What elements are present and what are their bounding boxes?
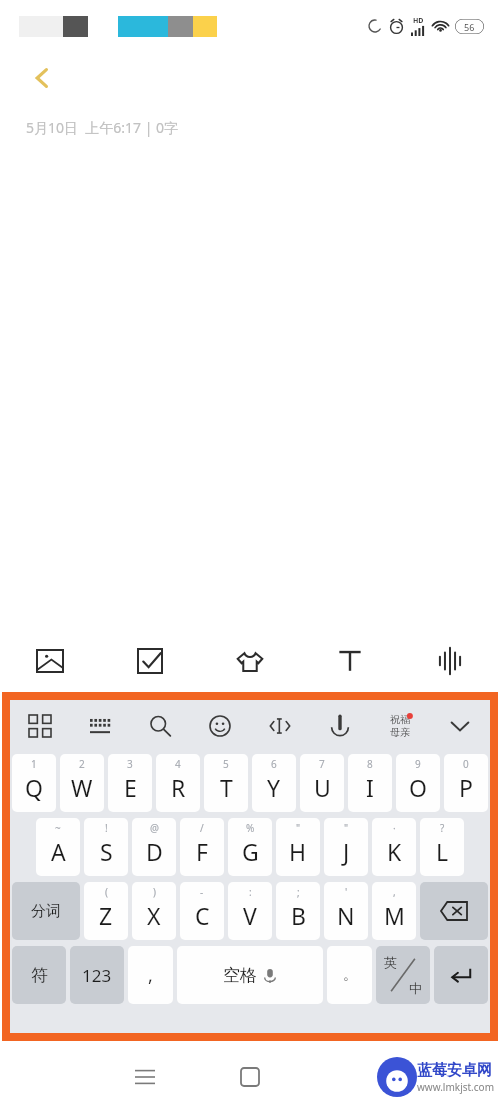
staticText: ,: [148, 963, 153, 988]
button[interactable]: Voice input: [310, 700, 370, 752]
staticText: ': [345, 885, 348, 899]
button[interactable]: (: [84, 882, 128, 940]
button[interactable]: 9: [396, 754, 440, 812]
button[interactable]: 6: [252, 754, 296, 812]
button[interactable]: Style: [200, 630, 300, 692]
staticText: ?: [440, 821, 445, 835]
button[interactable]: !: [84, 818, 128, 876]
staticText: 56: [464, 21, 475, 33]
button[interactable]: ": [324, 818, 368, 876]
button[interactable]: Keyboard layout: [70, 700, 130, 752]
button[interactable]: 8: [348, 754, 392, 812]
staticText: 英: [384, 954, 397, 970]
staticText: 1: [31, 757, 37, 771]
button[interactable]: %: [228, 818, 272, 876]
button[interactable]: 符: [12, 946, 66, 1004]
staticText: Y: [267, 772, 281, 803]
staticText: M: [384, 900, 405, 931]
staticText: 5: [223, 757, 229, 771]
staticText: U: [314, 772, 331, 803]
staticText: 。: [343, 966, 357, 984]
button[interactable]: Delete: [420, 882, 488, 940]
button[interactable]: Checklist: [100, 630, 200, 692]
staticText: 6: [271, 757, 277, 771]
staticText: Z: [99, 900, 113, 931]
staticText: X: [147, 900, 161, 931]
staticText: N: [337, 900, 355, 931]
staticText: E: [124, 772, 137, 803]
staticText: 8: [367, 757, 373, 771]
staticText: ;: [297, 885, 300, 899]
button[interactable]: 123: [70, 946, 124, 1004]
button[interactable]: Voice: [400, 630, 500, 692]
staticText: 分词: [31, 902, 61, 921]
button[interactable]: ,: [128, 946, 173, 1004]
button[interactable]: Recent apps: [121, 1053, 169, 1101]
staticText: A: [51, 836, 66, 867]
staticText: L: [436, 836, 449, 867]
staticText: 2: [79, 757, 85, 771]
button[interactable]: Insert image: [0, 630, 100, 692]
button[interactable]: Enter: [434, 946, 488, 1004]
button[interactable]: ~: [36, 818, 80, 876]
staticText: D: [146, 836, 163, 867]
staticText: /: [200, 821, 204, 835]
staticText: 符: [31, 965, 48, 986]
staticText: 9: [415, 757, 421, 771]
button[interactable]: ': [324, 882, 368, 940]
button[interactable]: ;: [276, 882, 320, 940]
button[interactable]: 1: [12, 754, 56, 812]
staticText: Q: [25, 772, 43, 803]
staticText: T: [220, 772, 233, 803]
button[interactable]: Greeting: [370, 700, 430, 752]
staticText: V: [243, 900, 257, 931]
button[interactable]: Home: [226, 1053, 274, 1101]
staticText: P: [459, 772, 473, 803]
button[interactable]: 。: [327, 946, 372, 1004]
button[interactable]: 5: [204, 754, 248, 812]
button[interactable]: ): [132, 882, 176, 940]
staticText: -: [200, 885, 204, 899]
button[interactable]: -: [180, 882, 224, 940]
button[interactable]: Hide keyboard: [430, 700, 490, 752]
staticText: 0: [463, 757, 469, 771]
staticText: (: [105, 885, 108, 899]
button[interactable]: Switch language: [376, 946, 430, 1004]
staticText: 母亲: [390, 726, 410, 739]
staticText: 4: [175, 757, 181, 771]
button[interactable]: Back: [18, 54, 66, 102]
button[interactable]: @: [132, 818, 176, 876]
staticText: ": [344, 821, 349, 835]
button[interactable]: Text format: [300, 630, 400, 692]
button[interactable]: Edit cursor: [250, 700, 310, 752]
staticText: J: [343, 836, 350, 867]
staticText: H: [289, 836, 307, 867]
button[interactable]: 空格: [177, 946, 323, 1004]
button[interactable]: :: [228, 882, 272, 940]
button[interactable]: 3: [108, 754, 152, 812]
staticText: ·: [393, 821, 396, 835]
button[interactable]: /: [180, 818, 224, 876]
button[interactable]: 4: [156, 754, 200, 812]
button[interactable]: 0: [444, 754, 488, 812]
staticText: :: [249, 885, 252, 899]
button[interactable]: Search: [130, 700, 190, 752]
button[interactable]: 7: [300, 754, 344, 812]
button[interactable]: ,: [372, 882, 416, 940]
staticText: R: [171, 772, 186, 803]
staticText: @: [150, 821, 159, 835]
button[interactable]: ": [276, 818, 320, 876]
button[interactable]: Grid: [10, 700, 70, 752]
button[interactable]: Emoji: [190, 700, 250, 752]
button[interactable]: ?: [420, 818, 464, 876]
staticText: C: [195, 900, 210, 931]
staticText: 蓝莓安卓网: [417, 1061, 492, 1080]
button[interactable]: ·: [372, 818, 416, 876]
staticText: !: [105, 821, 108, 835]
staticText: 3: [127, 757, 133, 771]
button[interactable]: 2: [60, 754, 104, 812]
staticText: G: [242, 836, 259, 867]
staticText: ): [153, 885, 156, 899]
staticText: ~: [55, 821, 61, 835]
button[interactable]: 分词: [12, 882, 80, 940]
